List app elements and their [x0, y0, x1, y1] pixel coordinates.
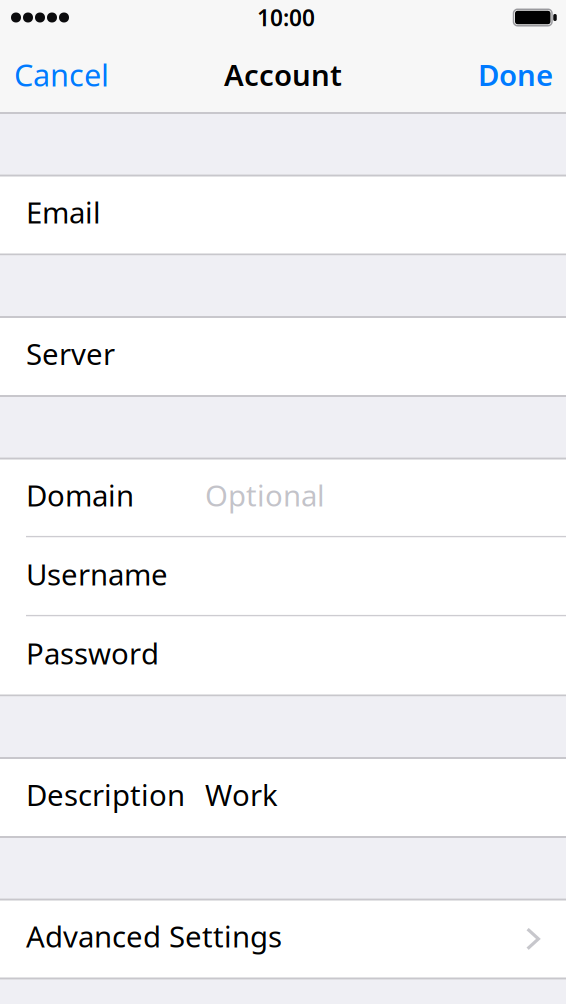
staticText: Password: [26, 633, 159, 672]
staticText: Advanced Settings: [26, 916, 282, 955]
staticText: Done: [478, 55, 553, 94]
staticText: Domain: [26, 475, 134, 514]
button[interactable]: Username: [0, 537, 566, 616]
staticText: Server: [26, 334, 115, 373]
button[interactable]: Description: [0, 758, 566, 837]
button[interactable]: Domain: [0, 458, 566, 537]
button[interactable]: Done: [465, 35, 566, 114]
button[interactable]: Password: [0, 616, 566, 695]
button[interactable]: Cancel: [0, 35, 123, 114]
staticText: Cancel: [14, 54, 109, 95]
staticText: Work: [205, 775, 278, 814]
staticText: 10:00: [257, 2, 315, 32]
staticText: Description: [26, 775, 185, 814]
staticText: Account: [224, 55, 342, 94]
staticText: Username: [26, 554, 168, 593]
staticText: Optional: [205, 475, 325, 514]
staticText: Email: [26, 192, 101, 231]
button[interactable]: Advanced Settings: [0, 899, 566, 978]
button[interactable]: Server: [0, 317, 566, 396]
button[interactable]: Email: [0, 175, 566, 254]
